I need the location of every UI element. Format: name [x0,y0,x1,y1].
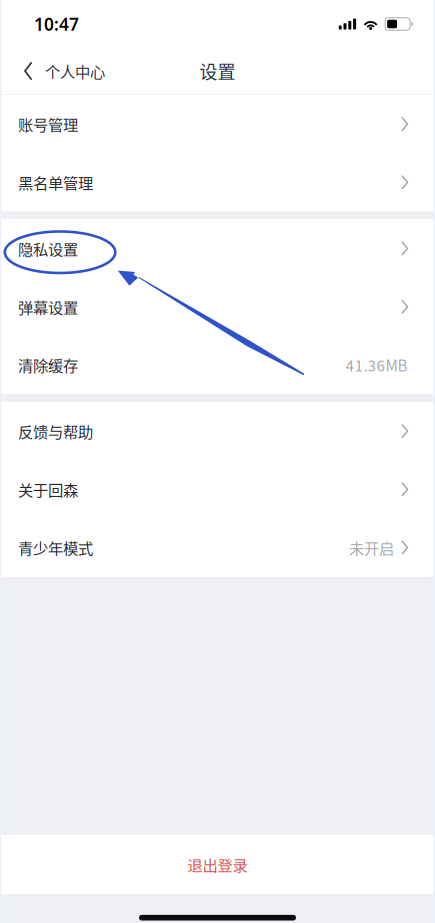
staticText: 退出登录 [187,853,247,876]
button[interactable]: 个人中心 [0,48,117,94]
staticText: 关于回森 [18,478,78,500]
staticText: 隐私设置 [18,237,78,260]
button[interactable]: 清除缓存 [0,336,435,394]
button[interactable]: 账号管理 [0,95,435,153]
button[interactable]: 关于回森 [0,460,435,518]
staticText: 清除缓存 [18,354,78,376]
staticText: 黑名单管理 [18,171,93,193]
button[interactable]: 黑名单管理 [0,153,435,211]
staticText: 青少年模式 [18,536,93,559]
button[interactable]: 隐私设置 [0,219,435,278]
button[interactable]: 退出登录 [0,835,435,894]
button[interactable]: 弹幕设置 [0,278,435,336]
staticText: 41.36MB [345,354,407,376]
staticText: 反馈与帮助 [18,420,93,442]
button[interactable]: 反馈与帮助 [0,402,435,460]
button[interactable]: 青少年模式 [0,518,435,577]
staticText: 弹幕设置 [18,296,78,318]
staticText: 个人中心 [45,60,105,82]
staticText: 账号管理 [18,113,78,135]
staticText: 10:47 [34,12,79,35]
staticText: 未开启 [349,536,394,559]
staticText: 设置 [199,58,235,84]
